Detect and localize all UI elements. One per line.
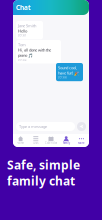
staticText: Home (17, 141, 25, 145)
staticText: Family (63, 141, 70, 145)
button[interactable]: Lists (28, 134, 43, 147)
staticText: Hi, all done with the piano 🎵 (18, 47, 51, 58)
staticText: Calendar (45, 141, 57, 145)
button[interactable]: Tom (16, 40, 61, 63)
button[interactable]: More (74, 134, 89, 147)
staticText: Hello (18, 28, 27, 34)
staticText: Safe, simple (7, 157, 80, 173)
staticText: family chat (7, 173, 75, 189)
staticText: Lists (33, 141, 38, 145)
button[interactable]: Sound cool, have fun! 🎉 (56, 63, 83, 81)
button[interactable]: Jane Smith (16, 21, 43, 39)
staticText: Type a message (19, 124, 47, 129)
staticText: 09:41 (18, 34, 27, 37)
staticText: More (78, 141, 85, 145)
button[interactable]: Family (59, 134, 74, 147)
button[interactable]: Send (77, 122, 86, 131)
staticText: Jane Smith (18, 23, 36, 28)
staticText: 09:42 (18, 58, 27, 61)
staticText: 09:44 (58, 76, 67, 79)
staticText: Sound cool, have fun! 🎉 (58, 65, 79, 76)
staticText: Chat (16, 3, 31, 12)
staticText: Tom (18, 42, 26, 47)
button[interactable]: Home (13, 134, 28, 147)
button[interactable]: Calendar (43, 134, 59, 147)
